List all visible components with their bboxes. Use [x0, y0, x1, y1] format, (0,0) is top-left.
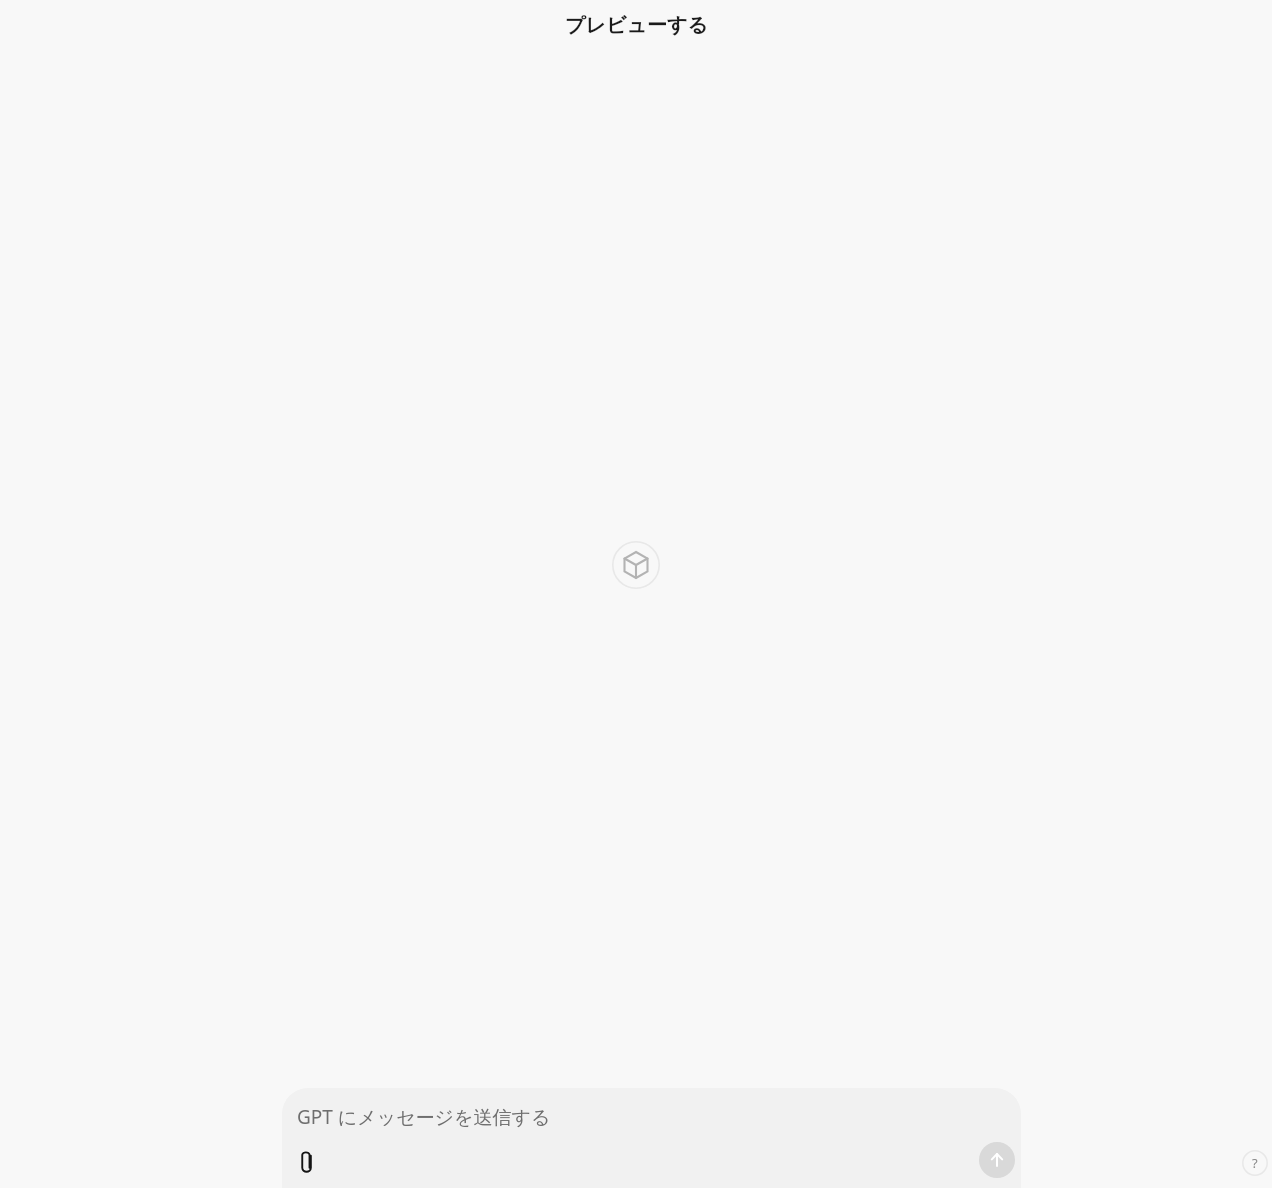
button[interactable]: Send [979, 1142, 1015, 1178]
button[interactable]: Attach file [287, 1144, 325, 1182]
button[interactable]: GPT にメッセージを送信する [282, 1088, 1021, 1188]
staticText: プレビューする [565, 13, 708, 38]
staticText: ? [1252, 1154, 1258, 1172]
staticText: GPT にメッセージを送信する [297, 1104, 551, 1130]
button[interactable]: Help [1242, 1150, 1268, 1176]
